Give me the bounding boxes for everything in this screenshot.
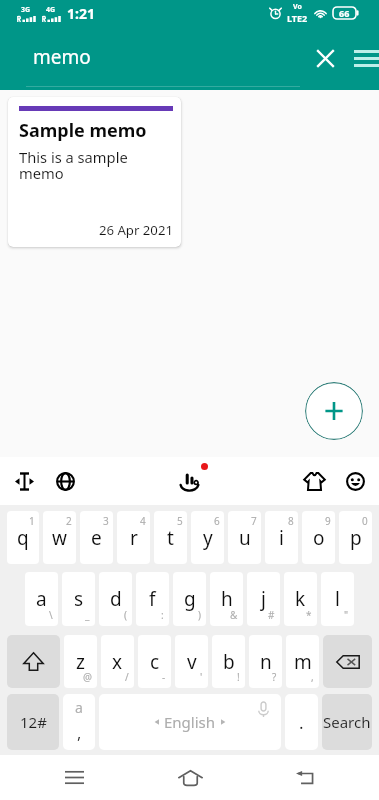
staticText: w (52, 525, 67, 551)
staticText: m (294, 649, 312, 675)
button[interactable]: Shift (7, 635, 60, 688)
button[interactable]: x (101, 635, 134, 688)
button[interactable]: Emoji (339, 465, 371, 497)
button[interactable]: p (339, 511, 372, 564)
button[interactable]: q (7, 511, 39, 564)
button[interactable]: Add memo (305, 382, 363, 440)
staticText: r (130, 525, 138, 551)
staticText: p (350, 525, 362, 551)
staticText: 8 (288, 514, 294, 528)
button[interactable]: Handwriting input (173, 465, 205, 497)
staticText: c (150, 649, 160, 675)
staticText: 4 (140, 514, 146, 528)
staticText: s (74, 586, 84, 612)
button[interactable]: j (247, 572, 280, 626)
button[interactable]: Clear (306, 39, 344, 77)
staticText: j (261, 586, 266, 612)
button[interactable]: m (286, 635, 319, 688)
staticText: memo (33, 44, 91, 70)
button[interactable]: a (63, 694, 95, 750)
button[interactable]: Recent apps (50, 755, 98, 800)
staticText: ( (124, 608, 127, 622)
button[interactable]: a (25, 572, 58, 626)
staticText: & (230, 608, 238, 622)
staticText: 1:21 (67, 4, 95, 23)
button[interactable]: Backspace (323, 635, 372, 688)
button[interactable]: e (80, 511, 113, 564)
button[interactable]: z (64, 635, 97, 688)
staticText: 9 (325, 514, 331, 528)
button[interactable]: Space (99, 694, 281, 750)
staticText: _ (85, 608, 90, 622)
staticText: 3 (103, 514, 109, 528)
staticText: n (260, 649, 272, 675)
staticText: k (295, 586, 306, 612)
staticText: o (313, 525, 325, 551)
staticText: 12# (20, 712, 47, 732)
button[interactable]: d (99, 572, 132, 626)
staticText: This is a sample memo (19, 147, 173, 184)
button[interactable]: k (284, 572, 317, 626)
button[interactable]: n (249, 635, 282, 688)
button[interactable]: Search (322, 694, 372, 750)
staticText: 1 (29, 514, 35, 528)
button[interactable]: Switch language (49, 465, 81, 497)
button[interactable]: b (212, 635, 245, 688)
button[interactable]: h (210, 572, 243, 626)
staticText: Search (323, 712, 371, 732)
staticText: 0 (362, 514, 368, 528)
staticText: u (239, 525, 251, 551)
staticText: 2 (66, 514, 72, 528)
button[interactable]: Home (166, 755, 214, 800)
staticText: b (223, 649, 235, 675)
staticText: : (161, 608, 164, 622)
staticText: @ (83, 670, 92, 684)
staticText: z (76, 649, 85, 675)
staticText: LTE2 (287, 12, 308, 24)
staticText: Vo (293, 2, 302, 12)
staticText: a (75, 698, 83, 717)
button[interactable]: 12# (7, 694, 59, 750)
staticText: l (335, 586, 340, 612)
staticText: , (311, 670, 314, 684)
staticText: f (149, 586, 156, 612)
staticText: , (77, 722, 82, 744)
staticText: ? (272, 670, 277, 684)
staticText: x (112, 649, 123, 675)
staticText: / (125, 670, 129, 684)
button[interactable]: Back (281, 755, 329, 800)
button[interactable]: w (43, 511, 76, 564)
button[interactable]: g (173, 572, 206, 626)
button[interactable]: i (265, 511, 298, 564)
button[interactable]: c (138, 635, 171, 688)
staticText: 5 (177, 514, 183, 528)
button[interactable]: t (154, 511, 187, 564)
staticText: y (203, 525, 213, 551)
button[interactable]: s (62, 572, 95, 626)
button[interactable]: y (191, 511, 224, 564)
button[interactable]: Keyboard theme (298, 465, 330, 497)
staticText: * (306, 608, 312, 622)
button[interactable]: r (117, 511, 150, 564)
button[interactable]: Sample memo (8, 97, 181, 247)
staticText: ! (237, 670, 240, 684)
staticText: t (167, 525, 174, 551)
staticText: 3G (21, 5, 31, 15)
staticText: Sample memo (19, 118, 147, 143)
button[interactable]: l (321, 572, 354, 626)
staticText: i (279, 525, 284, 551)
button[interactable]: Move cursor (8, 465, 40, 497)
staticText: g (184, 586, 196, 612)
staticText: e (91, 525, 102, 551)
staticText: \ (49, 608, 53, 622)
button[interactable]: u (228, 511, 261, 564)
button[interactable]: f (136, 572, 169, 626)
button[interactable]: o (302, 511, 335, 564)
button[interactable]: . (285, 694, 318, 750)
button[interactable]: v (175, 635, 208, 688)
staticText: ' (200, 670, 203, 684)
staticText: q (17, 525, 29, 551)
staticText: ) (198, 608, 201, 622)
button[interactable]: Menu (354, 39, 379, 77)
staticText: . (299, 711, 304, 734)
